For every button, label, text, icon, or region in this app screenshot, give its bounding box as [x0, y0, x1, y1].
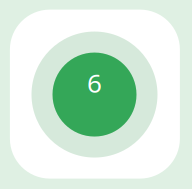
button[interactable]: 6 [52, 52, 136, 136]
staticText: 6 [87, 65, 102, 100]
